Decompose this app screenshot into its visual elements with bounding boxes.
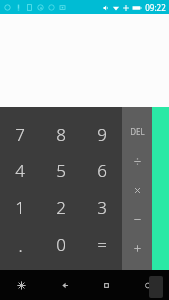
- staticText: 2: [56, 196, 66, 219]
- button[interactable]: DEL: [122, 116, 152, 146]
- button[interactable]: 2: [40, 189, 81, 226]
- button[interactable]: 3: [81, 189, 122, 226]
- button[interactable]: 9: [81, 116, 122, 152]
- staticText: .: [18, 232, 23, 258]
- staticText: DEL: [130, 126, 145, 137]
- staticText: 5: [56, 159, 66, 182]
- button[interactable]: .: [0, 226, 40, 263]
- button[interactable]: Home: [85, 270, 127, 300]
- staticText: 6: [97, 159, 107, 182]
- staticText: 7: [15, 123, 25, 146]
- button[interactable]: Menu: [0, 270, 43, 300]
- button[interactable]: 8: [40, 116, 81, 152]
- button[interactable]: 7: [0, 116, 40, 152]
- button[interactable]: Minus: [122, 205, 152, 234]
- staticText: 9: [97, 123, 107, 146]
- button[interactable]: =: [81, 226, 122, 263]
- button[interactable]: 0: [40, 226, 81, 263]
- staticText: 1: [15, 196, 25, 219]
- button[interactable]: Divide: [122, 146, 152, 176]
- button[interactable]: 5: [40, 152, 81, 189]
- button[interactable]: Plus: [122, 234, 152, 263]
- button[interactable]: Multiply: [122, 176, 152, 205]
- button[interactable]: Recents: [127, 270, 169, 300]
- staticText: 4: [15, 159, 25, 182]
- staticText: 0: [56, 233, 66, 256]
- staticText: 8: [56, 123, 66, 146]
- staticText: 3: [97, 196, 107, 219]
- button[interactable]: 4: [0, 152, 40, 189]
- button[interactable]: Back: [43, 270, 85, 300]
- staticText: 09:22: [145, 2, 166, 13]
- button[interactable]: 1: [0, 189, 40, 226]
- staticText: =: [97, 233, 107, 256]
- button[interactable]: 6: [81, 152, 122, 189]
